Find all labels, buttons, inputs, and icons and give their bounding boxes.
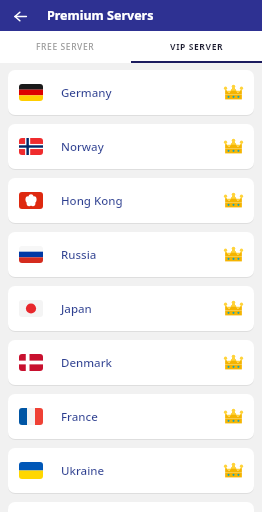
staticText: Norway bbox=[61, 139, 104, 155]
staticText: Premium Servers bbox=[47, 7, 154, 24]
other: Premium bbox=[224, 301, 243, 317]
button[interactable]: FREE SERVER bbox=[0, 31, 131, 63]
other: Premium bbox=[224, 139, 243, 155]
staticText: Ukraine bbox=[61, 463, 105, 479]
staticText: FREE SERVER bbox=[36, 41, 95, 53]
staticText: Denmark bbox=[61, 355, 112, 371]
button[interactable]: Ukraine bbox=[8, 448, 254, 493]
button[interactable]: Russia bbox=[8, 232, 254, 277]
button[interactable]: Denmark bbox=[8, 340, 254, 385]
button[interactable]: Japan bbox=[8, 286, 254, 331]
staticText: Germany bbox=[61, 85, 112, 101]
other: Premium bbox=[224, 247, 243, 263]
button[interactable]: France bbox=[8, 394, 254, 439]
button[interactable]: Back bbox=[8, 4, 32, 28]
other: Premium bbox=[224, 409, 243, 425]
staticText: France bbox=[61, 409, 98, 425]
staticText: Russia bbox=[61, 247, 97, 263]
other: Premium bbox=[224, 463, 243, 479]
other: Premium bbox=[224, 85, 243, 101]
staticText: Japan bbox=[61, 301, 92, 317]
staticText: VIP SERVER bbox=[170, 41, 224, 53]
staticText: Hong Kong bbox=[61, 193, 123, 209]
button[interactable]: VIP SERVER bbox=[131, 31, 262, 63]
button[interactable]: Hong Kong bbox=[8, 178, 254, 223]
button[interactable]: Germany bbox=[8, 70, 254, 115]
other: Premium bbox=[224, 193, 243, 209]
other: Premium bbox=[224, 355, 243, 371]
button[interactable]: Norway bbox=[8, 124, 254, 169]
